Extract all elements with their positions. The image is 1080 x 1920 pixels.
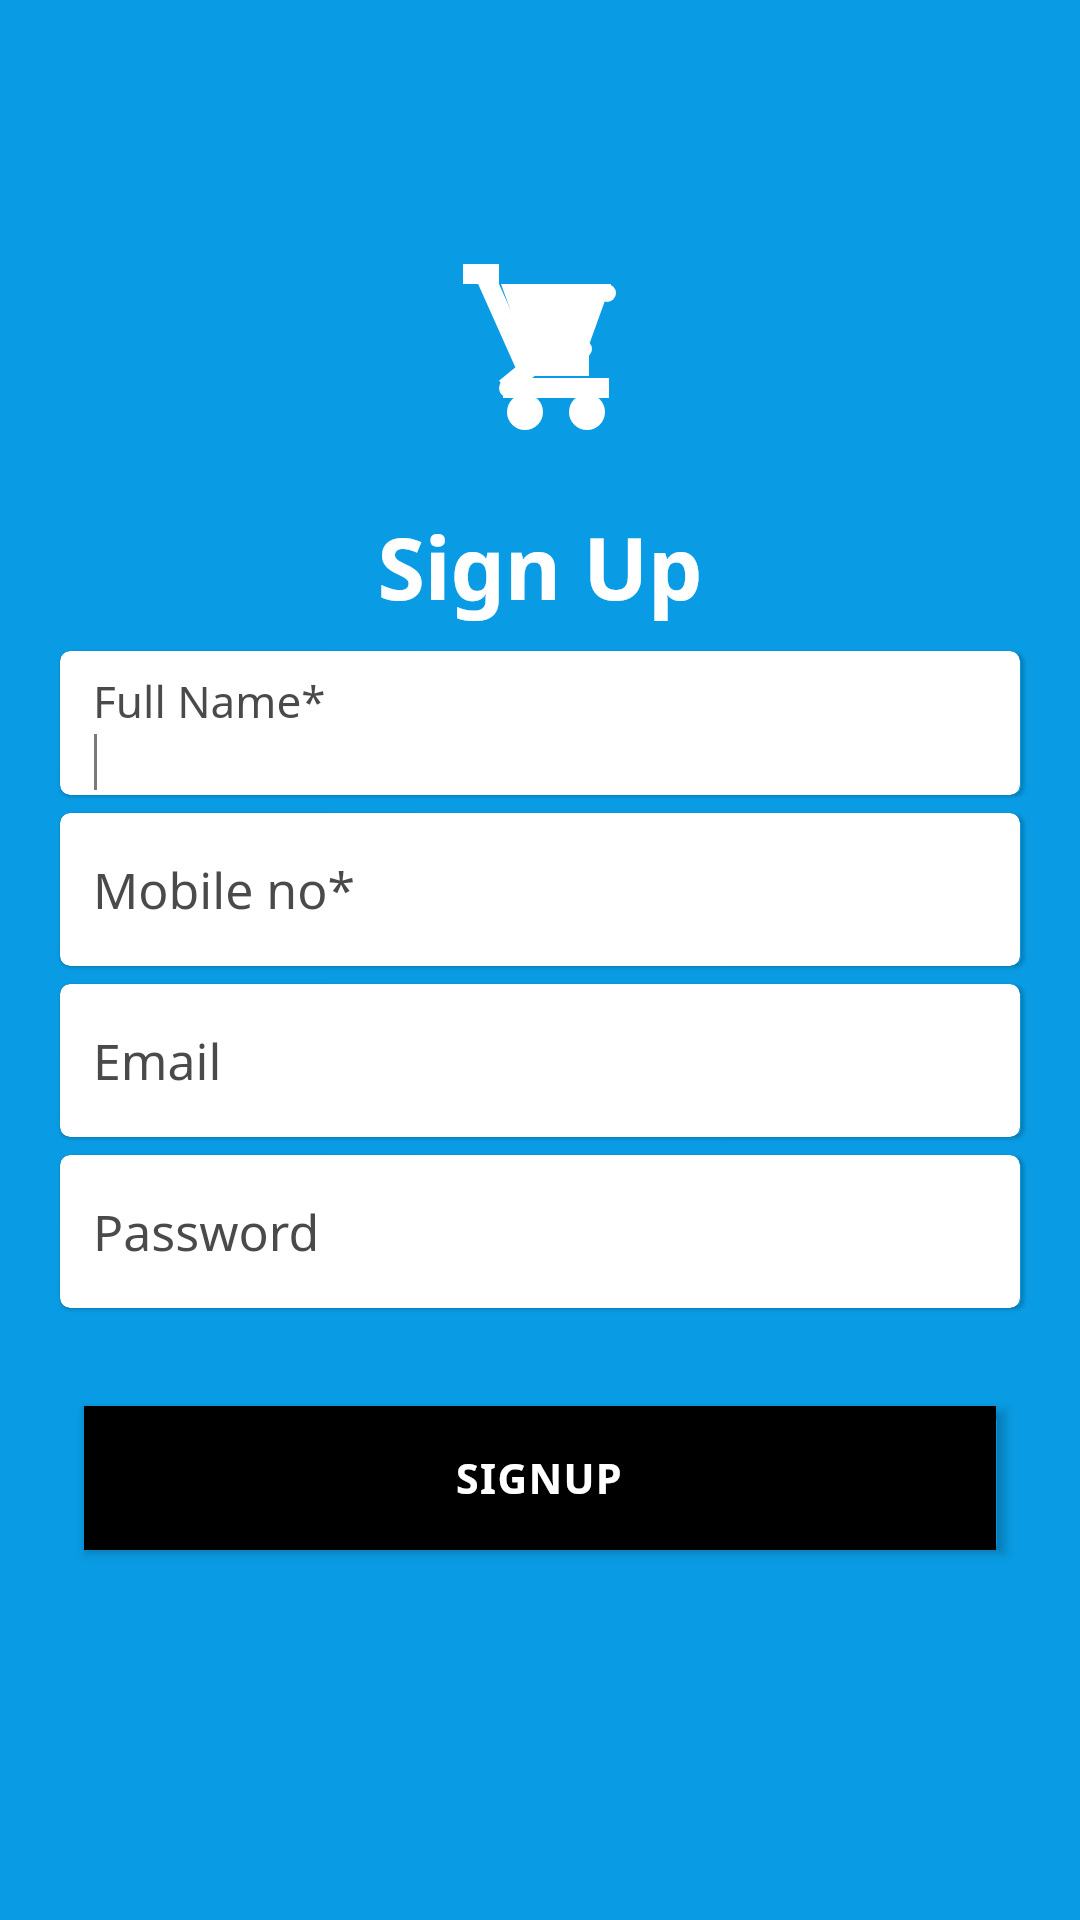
staticText: SIGNUP (456, 1450, 624, 1506)
staticText: Full Name* (93, 671, 326, 731)
staticText: Mobile no* (93, 856, 356, 924)
button[interactable]: Password (60, 1155, 1020, 1308)
staticText: Sign Up (377, 508, 703, 625)
button[interactable]: Email (60, 984, 1020, 1137)
button[interactable]: Full Name* (60, 651, 1020, 795)
button[interactable]: Mobile no* (60, 813, 1020, 966)
staticText: Email (93, 1027, 222, 1095)
other: Shopping cart logo (461, 262, 619, 424)
button[interactable]: SIGNUP (84, 1406, 996, 1550)
staticText: Password (93, 1198, 320, 1266)
